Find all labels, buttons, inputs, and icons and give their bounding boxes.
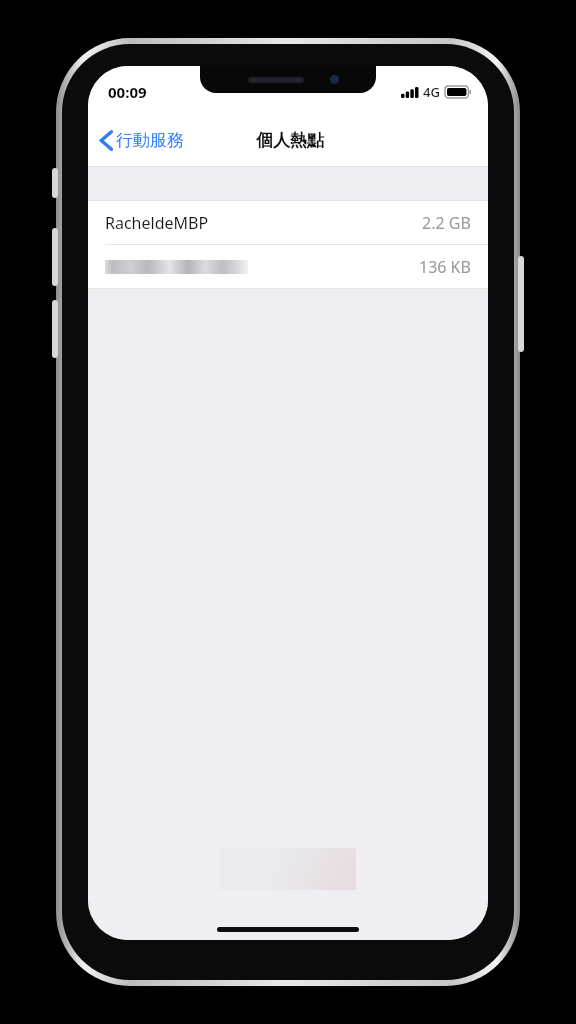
staticText: 行動服務 <box>116 130 184 151</box>
other: Hidden device name <box>105 260 248 274</box>
staticText: 00:09 <box>108 82 147 102</box>
staticText: 2.2 GB <box>422 212 471 234</box>
button[interactable]: Hidden device name <box>88 245 488 288</box>
button[interactable]: RacheldeMBP <box>88 201 488 244</box>
staticText: RacheldeMBP <box>105 212 209 234</box>
staticText: 個人熱點 <box>256 130 324 151</box>
staticText: 136 KB <box>419 256 471 278</box>
staticText: 4G <box>423 83 440 101</box>
button[interactable]: 行動服務 <box>88 124 194 157</box>
